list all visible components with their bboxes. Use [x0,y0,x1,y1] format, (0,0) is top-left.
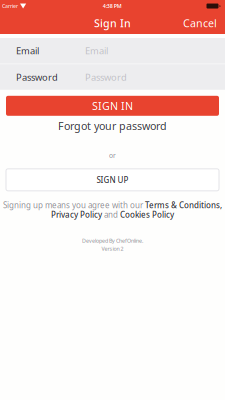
staticText: Email [16,45,39,57]
button[interactable]: SIGN UP [6,169,219,191]
staticText: Forgot your password [58,119,167,133]
staticText: Developed By ChefOnline. [82,237,143,244]
staticText: Carrier [2,2,18,10]
staticText: SIGN IN [92,99,133,113]
staticText: Signing up means you agree with our Term… [3,200,222,210]
staticText: Sign In [94,16,131,30]
staticText: Version 2 [101,245,123,252]
button[interactable]: Forgot your password [52,118,173,134]
staticText: SIGN UP [96,174,128,185]
staticText: Privacy Policy and Cookies Policy [51,209,174,220]
staticText: Password [85,71,127,83]
button[interactable]: Password [0,64,225,90]
staticText: Cancel [183,16,217,30]
staticText: or [109,151,116,160]
staticText: 4:38 PM [103,2,122,10]
button[interactable]: Cancel [175,11,225,35]
staticText: Password [16,71,58,83]
button[interactable]: Email [0,38,225,63]
staticText: Email [85,45,108,57]
button[interactable]: SIGN IN [6,96,219,116]
